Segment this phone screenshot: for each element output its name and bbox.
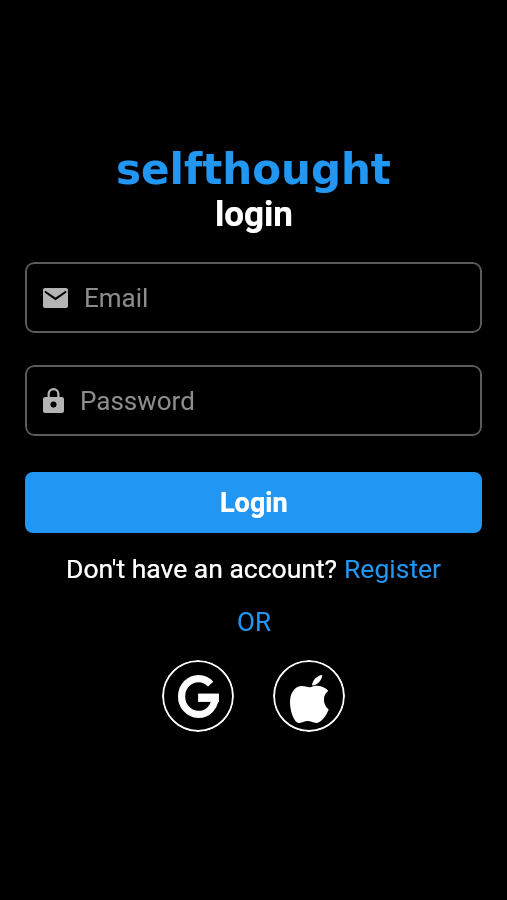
button[interactable]: Register [344, 553, 442, 584]
button[interactable]: Email [25, 262, 482, 333]
staticText: Don't have an account? [66, 553, 344, 584]
button[interactable]: Sign in with Google [162, 660, 234, 732]
staticText: Email [84, 283, 149, 313]
staticText: Login [220, 487, 288, 519]
staticText: Password [80, 386, 195, 416]
button[interactable]: Login [25, 472, 482, 533]
staticText: login [215, 194, 293, 235]
button[interactable]: Password [25, 365, 482, 436]
staticText: Register [344, 553, 442, 584]
staticText: OR [237, 607, 271, 637]
button[interactable]: Sign in with Apple [273, 660, 345, 732]
staticText: selfthought [116, 145, 391, 194]
